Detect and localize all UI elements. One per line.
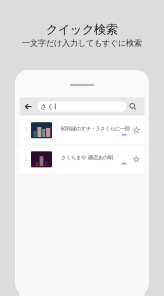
staticText: さく — [40, 102, 54, 111]
button[interactable]: 2 — [19, 145, 144, 173]
button[interactable]: 1 — [19, 116, 144, 145]
staticText: 昭和縁のすチ・3 さくらに一郎 — [61, 125, 130, 132]
staticText: 1 — [25, 127, 27, 133]
button[interactable]: Back — [25, 103, 32, 110]
staticText: 2 — [25, 157, 27, 162]
staticText: クイック検索 — [46, 22, 118, 37]
button[interactable]: Search — [129, 103, 136, 110]
staticText: さくらまや 廻恋あの唄 — [61, 154, 113, 161]
staticText: 一文字だけ入力してもすぐに検索 — [22, 38, 142, 48]
